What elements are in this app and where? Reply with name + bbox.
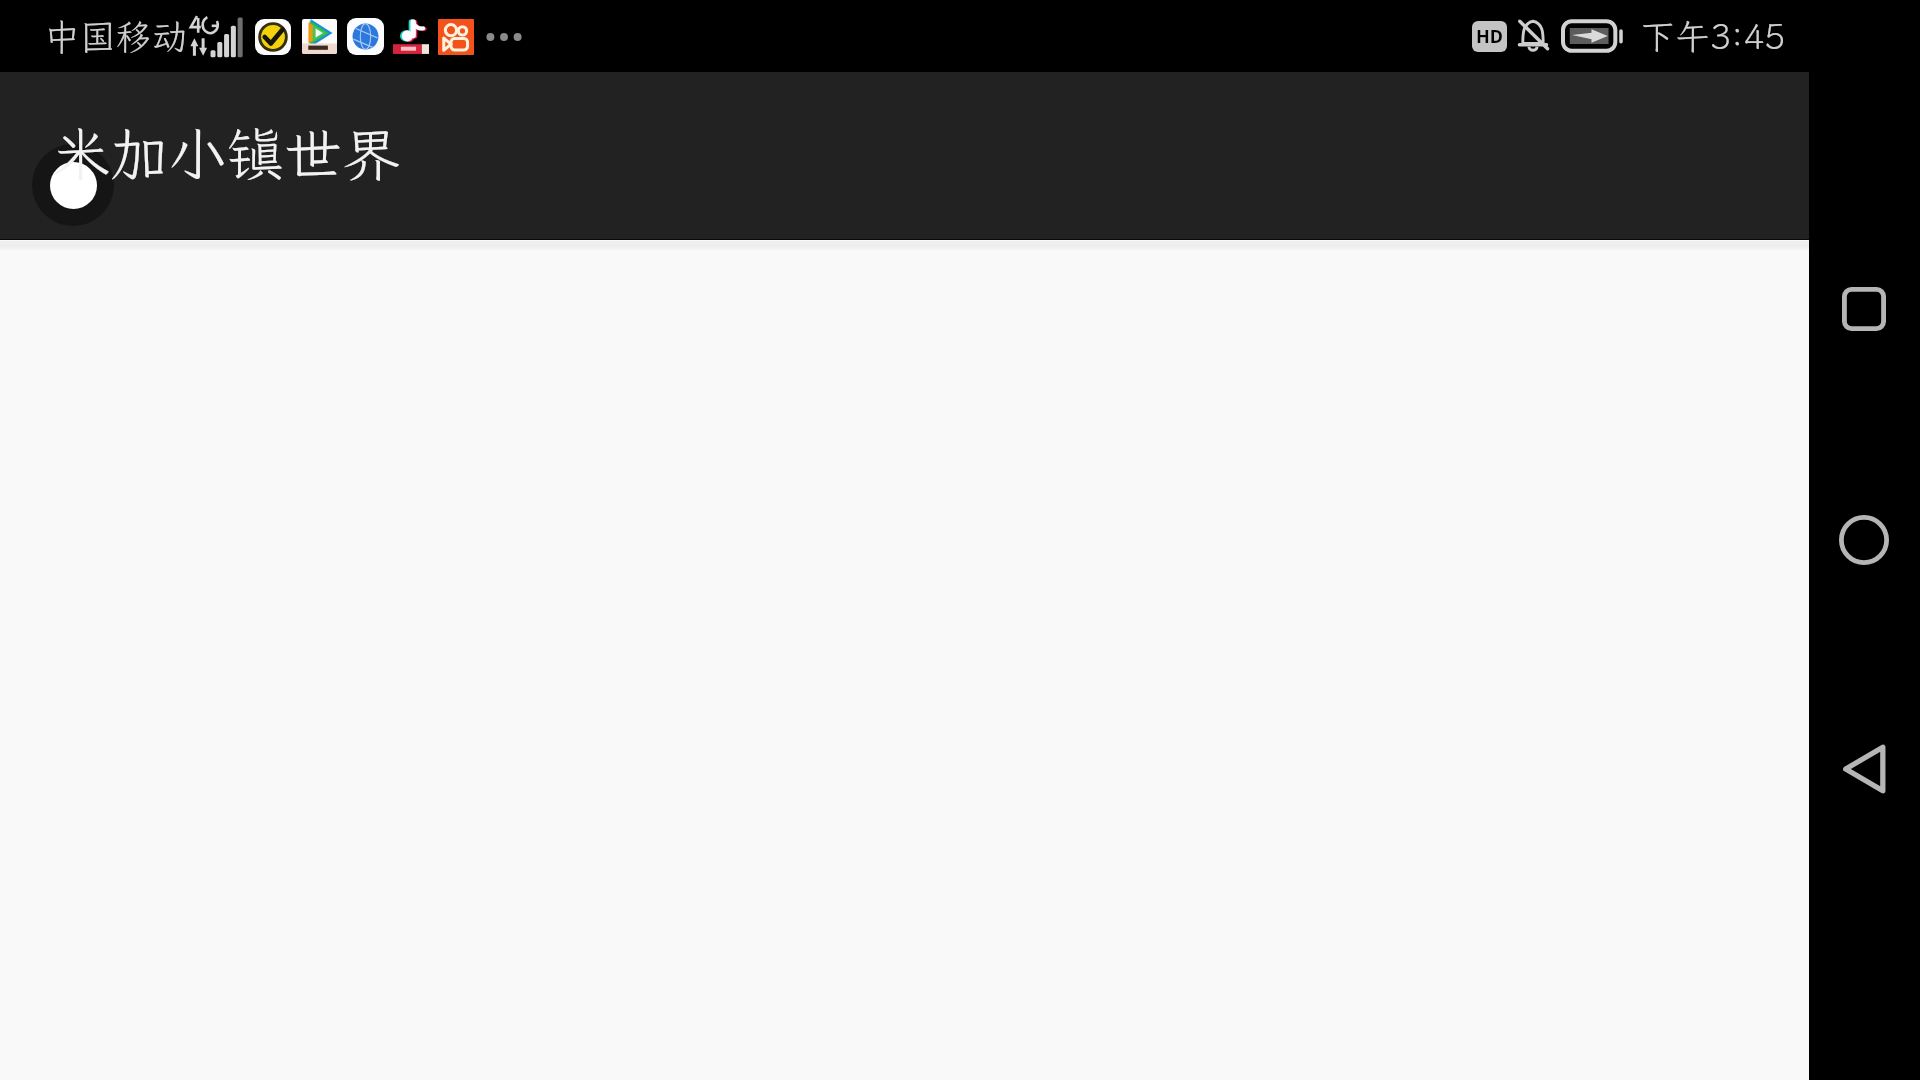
button[interactable]: Recents: [1833, 278, 1895, 340]
staticText: HD: [1476, 24, 1503, 49]
staticText: 下午3:45: [1640, 13, 1786, 59]
button[interactable]: Home: [1833, 509, 1895, 571]
button[interactable]: Loading: [32, 144, 114, 226]
button[interactable]: Back: [1833, 738, 1895, 800]
staticText: 米加小镇世界: [52, 115, 401, 191]
button[interactable]: 米加小镇世界: [44, 72, 393, 239]
staticText: 中国移动: [44, 13, 189, 60]
